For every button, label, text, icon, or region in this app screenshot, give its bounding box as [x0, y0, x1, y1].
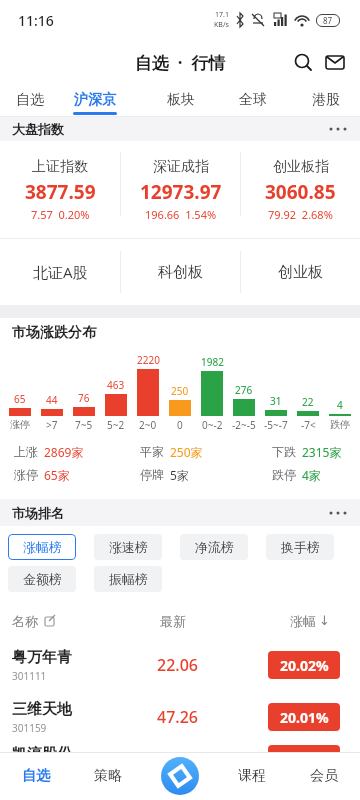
staticText: 粤万年青 — [12, 648, 72, 667]
staticText: 20.00% — [280, 750, 329, 769]
button[interactable] — [144, 752, 216, 800]
staticText: 12973.97 — [140, 179, 222, 205]
button[interactable] — [328, 123, 348, 135]
staticText: 301001 — [12, 766, 47, 780]
staticText: 上证指数 — [32, 158, 88, 176]
button[interactable]: 自选 — [16, 84, 44, 116]
staticText: 跌停 — [272, 467, 296, 482]
staticText: 深证成指 — [153, 158, 209, 176]
staticText: 课程 — [238, 767, 266, 785]
staticText: 2~0 — [139, 418, 157, 432]
staticText: 250家 — [170, 444, 203, 460]
button[interactable]: 板块 — [167, 84, 195, 116]
button[interactable]: 涨速榜 — [94, 534, 162, 560]
staticText: KB/s — [214, 20, 229, 30]
staticText: 涨幅榜 — [23, 539, 62, 555]
button[interactable]: 金额榜 — [8, 566, 76, 592]
staticText: 7.57 0.20% — [31, 207, 90, 222]
staticText: 301111 — [12, 669, 47, 683]
staticText: 1982 — [201, 355, 224, 369]
staticText: 65 — [14, 392, 26, 406]
staticText: 创业板指 — [273, 158, 329, 176]
staticText: 全球 — [239, 91, 267, 109]
staticText: 涨幅 — [290, 613, 316, 629]
staticText: 4 — [337, 398, 343, 412]
staticText: 凯淳股份 — [12, 745, 72, 764]
button[interactable]: 凯淳股份 — [0, 743, 360, 795]
button[interactable]: 三维天地 — [0, 691, 360, 743]
staticText: 79.92 2.68% — [268, 207, 333, 222]
staticText: 20.01% — [280, 708, 329, 727]
staticText: 47.26 — [157, 706, 198, 728]
staticText: 22 — [302, 395, 314, 409]
button[interactable]: 港股 — [312, 84, 340, 116]
staticText: 板块 — [167, 91, 195, 109]
staticText: 196.66 1.54% — [145, 207, 217, 222]
staticText: 沪深京 — [74, 91, 116, 109]
staticText: 名称 — [12, 613, 38, 629]
staticText: 三维天地 — [12, 700, 72, 719]
staticText: 17.1 — [215, 10, 229, 20]
staticText: 2315家 — [302, 444, 342, 460]
staticText: 7~5 — [75, 418, 93, 432]
button[interactable]: 粤万年青 — [0, 639, 360, 691]
staticText: 净流榜 — [195, 539, 234, 555]
button[interactable]: 换手榜 — [266, 534, 334, 560]
button[interactable]: 上证指数 — [0, 141, 120, 222]
button[interactable]: 振幅榜 — [94, 566, 162, 592]
staticText: 3877.59 — [25, 179, 96, 205]
staticText: -2~-5 — [232, 418, 256, 432]
button[interactable]: 课程 — [216, 752, 288, 800]
staticText: 76 — [78, 391, 90, 405]
staticText: 44 — [46, 393, 58, 407]
staticText: 上涨 — [14, 444, 38, 459]
staticText: 换手榜 — [281, 539, 320, 555]
button[interactable]: 科创板 — [121, 239, 240, 305]
staticText: 22.06 — [157, 654, 198, 676]
staticText: >7 — [46, 418, 58, 432]
staticText: 0 — [177, 418, 183, 432]
staticText: ↓ — [319, 613, 330, 628]
button[interactable]: 策略 — [72, 752, 144, 800]
staticText: 港股 — [312, 91, 340, 109]
staticText: 11:16 — [18, 11, 54, 30]
button[interactable]: 自选 — [0, 752, 72, 800]
staticText: 策略 — [94, 767, 122, 785]
staticText: 最新 — [160, 613, 186, 629]
staticText: 301159 — [12, 721, 47, 735]
staticText: 276 — [235, 383, 253, 397]
staticText: 0~-2 — [202, 418, 223, 432]
staticText: 涨停 — [14, 467, 38, 482]
staticText: 市场涨跌分布 — [12, 324, 96, 342]
button[interactable]: 深证成指 — [121, 141, 240, 222]
button[interactable]: 净流榜 — [180, 534, 248, 560]
staticText: -5~-7 — [264, 418, 288, 432]
button[interactable]: 会员 — [288, 752, 360, 800]
button[interactable] — [292, 51, 314, 73]
staticText: 北证A股 — [33, 262, 88, 282]
button[interactable]: 涨幅榜 — [8, 534, 76, 560]
staticText: 涨速榜 — [109, 539, 148, 555]
button[interactable]: 全球 — [239, 84, 267, 116]
staticText: 250 — [171, 384, 189, 398]
staticText: 振幅榜 — [109, 571, 148, 587]
button[interactable]: 北证A股 — [0, 239, 120, 305]
staticText: 自选 — [16, 91, 44, 109]
staticText: 87 — [323, 15, 333, 26]
staticText: 下跌 — [272, 444, 296, 459]
button[interactable]: 沪深京 — [73, 84, 117, 116]
button[interactable] — [324, 51, 346, 73]
staticText: 31 — [270, 394, 282, 408]
staticText: 2220 — [137, 353, 160, 367]
staticText: 463 — [107, 378, 125, 392]
staticText: 3060.85 — [265, 179, 336, 205]
staticText: 金额榜 — [23, 571, 62, 587]
button[interactable]: 创业板 — [241, 239, 360, 305]
staticText: 2869家 — [44, 444, 84, 460]
staticText: 会员 — [310, 767, 338, 785]
staticText: 5~2 — [107, 418, 125, 432]
staticText: 31.54 — [157, 757, 198, 779]
button[interactable] — [328, 507, 348, 519]
staticText: 20.02% — [280, 656, 329, 675]
button[interactable]: 创业板指 — [241, 141, 360, 222]
